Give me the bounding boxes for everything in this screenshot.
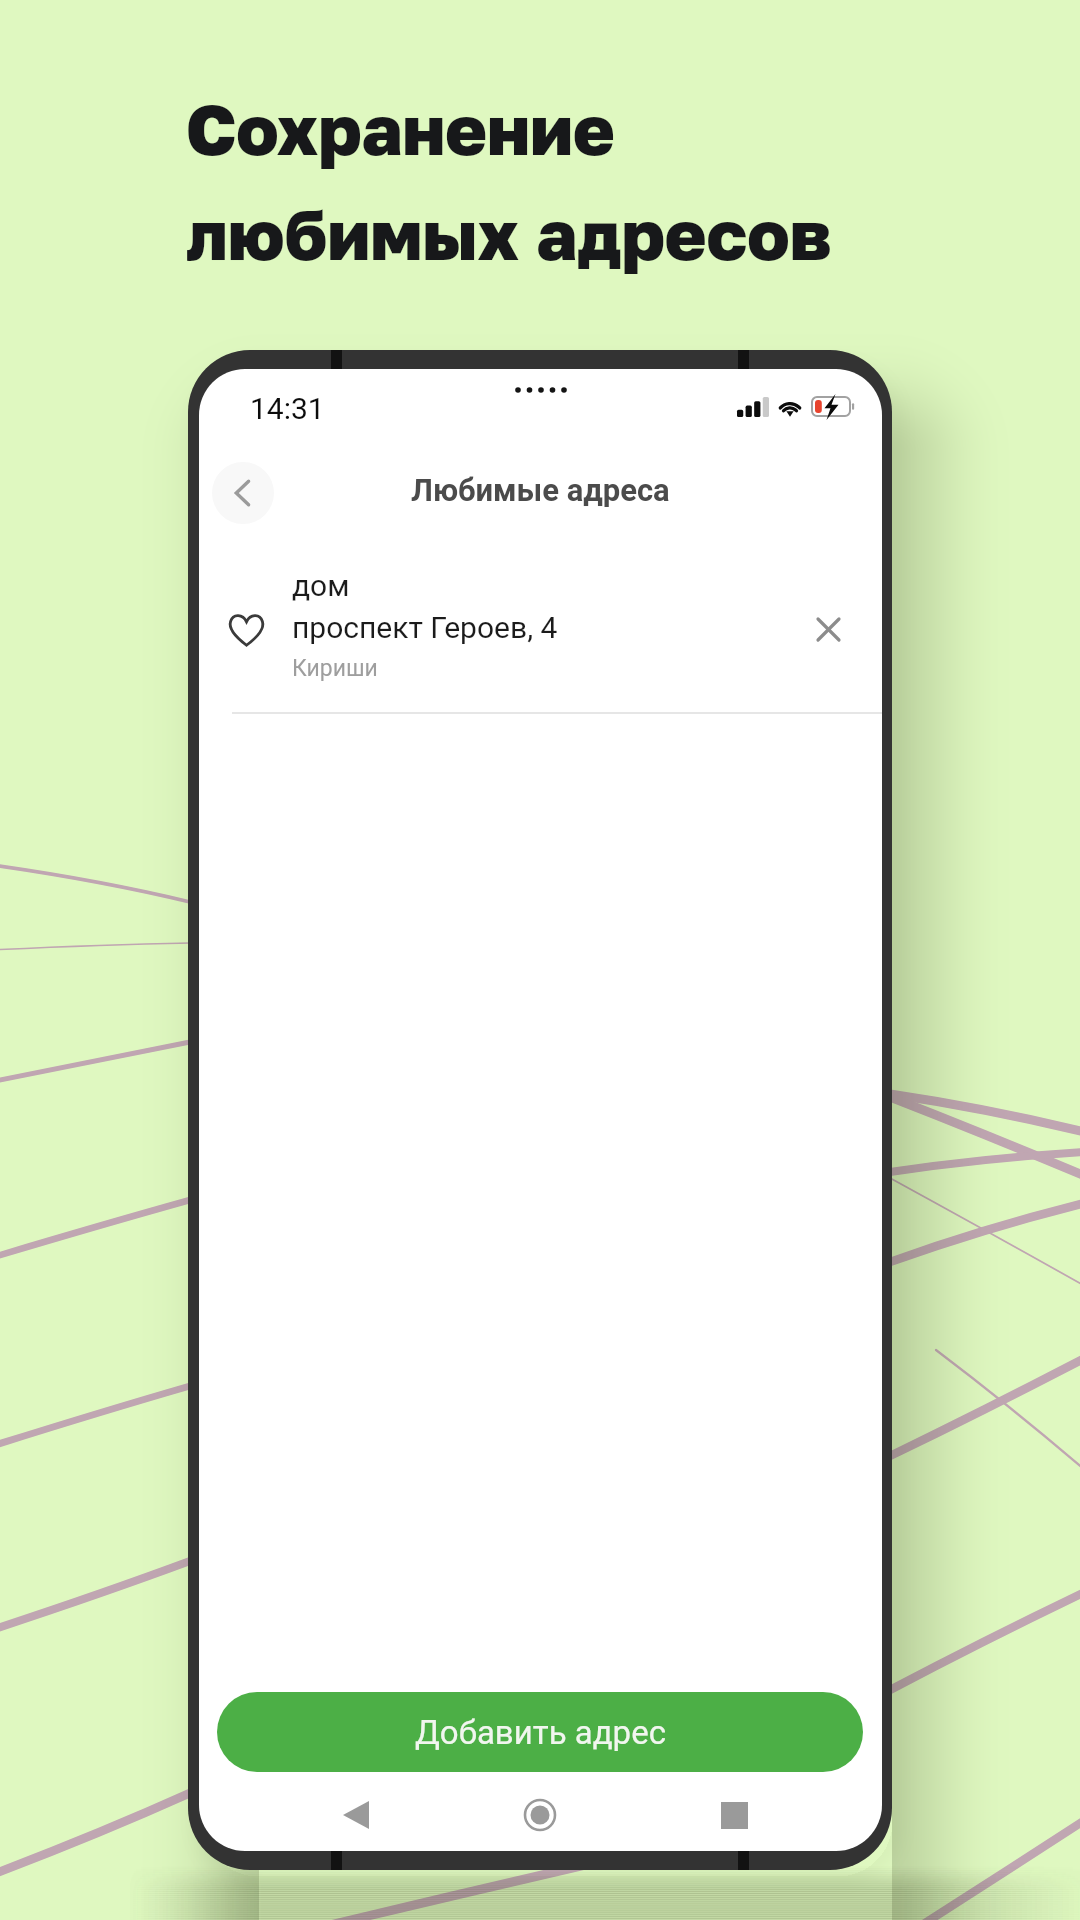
staticText: дом — [292, 568, 350, 603]
staticText: проспект Героев, 4 — [292, 610, 558, 645]
button[interactable]: Домой — [518, 1793, 562, 1837]
button[interactable]: дом — [199, 543, 882, 713]
staticText: Сохранение любимых адресов — [186, 86, 832, 275]
button[interactable]: Добавить адрес — [217, 1692, 863, 1772]
staticText: Любимые адреса — [411, 472, 670, 508]
button[interactable]: Назад — [334, 1793, 378, 1837]
staticText: Кириши — [292, 655, 378, 682]
button[interactable]: Удалить — [796, 597, 860, 661]
staticText: 14:31 — [250, 391, 325, 426]
staticText: Добавить адрес — [415, 1713, 666, 1752]
button[interactable]: Назад — [212, 462, 274, 524]
button[interactable]: Недавние — [712, 1793, 756, 1837]
